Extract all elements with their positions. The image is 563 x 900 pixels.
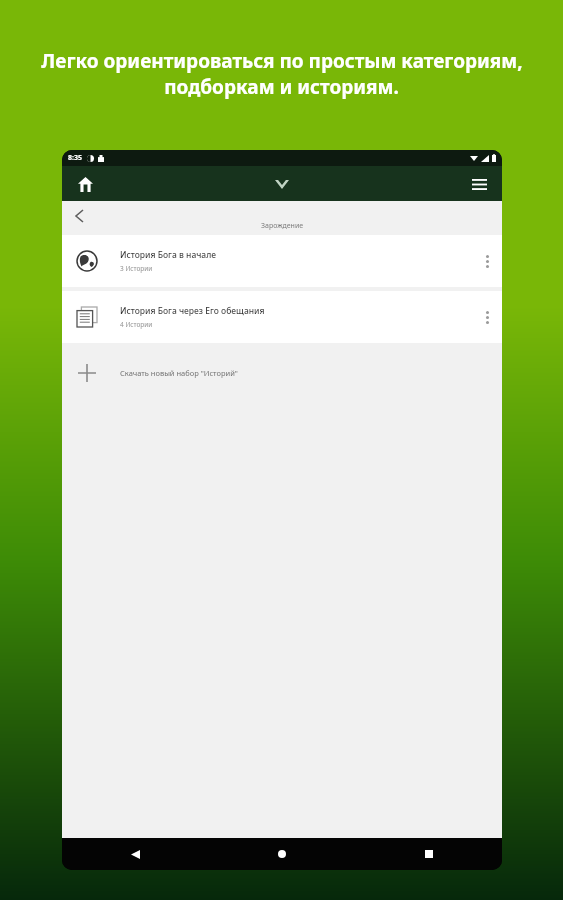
staticText: 8:35 xyxy=(68,153,82,163)
button[interactable]: Back xyxy=(66,203,92,229)
staticText: История Бога через Его обещания xyxy=(120,305,265,317)
button[interactable]: Expand xyxy=(267,169,297,199)
staticText: 3 Истории xyxy=(120,264,153,273)
button[interactable]: Home xyxy=(208,838,355,870)
staticText: 4 Истории xyxy=(120,320,153,329)
staticText: Зарождение xyxy=(261,221,304,231)
staticText: Скачать новый набор "Историй" xyxy=(120,368,238,378)
button[interactable]: История Бога в начале xyxy=(62,235,502,287)
button[interactable]: More options xyxy=(472,291,502,343)
button[interactable]: Recent apps xyxy=(355,838,502,870)
staticText: подборкам и историям. xyxy=(164,74,399,100)
button[interactable]: More options xyxy=(472,235,502,287)
button[interactable]: История Бога через Его обещания xyxy=(62,291,502,343)
button[interactable]: Menu xyxy=(464,169,494,199)
staticText: История Бога в начале xyxy=(120,249,217,261)
staticText: Легко ориентироваться по простым категор… xyxy=(41,48,523,74)
button[interactable]: Скачать новый набор "Историй" xyxy=(62,353,502,393)
button[interactable]: Home xyxy=(70,169,100,199)
button[interactable]: Back xyxy=(62,838,208,870)
